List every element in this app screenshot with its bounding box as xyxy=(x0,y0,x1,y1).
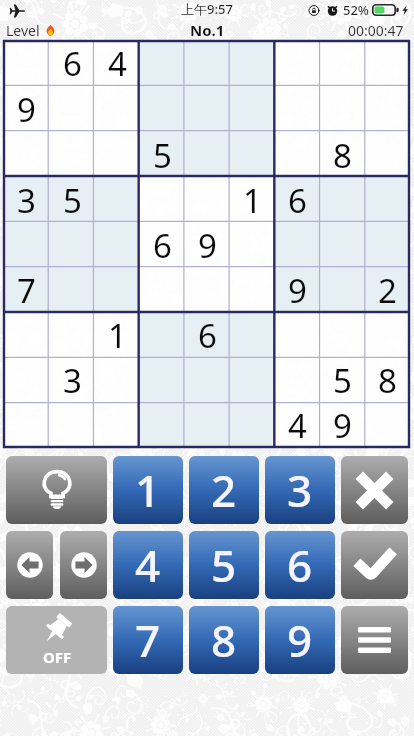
button[interactable]: 3 xyxy=(49,358,95,403)
button[interactable]: Undo xyxy=(6,531,53,599)
button[interactable]: 6 xyxy=(140,223,185,268)
button[interactable] xyxy=(95,132,140,178)
button[interactable]: 9 xyxy=(275,268,320,313)
button[interactable]: 6 xyxy=(265,531,335,599)
button[interactable] xyxy=(230,358,275,403)
button[interactable] xyxy=(49,313,95,358)
button[interactable]: 2 xyxy=(365,268,410,313)
button[interactable] xyxy=(275,40,320,86)
button[interactable] xyxy=(230,40,275,86)
button[interactable] xyxy=(185,40,230,86)
button[interactable]: 4 xyxy=(275,403,320,448)
button[interactable] xyxy=(95,223,140,268)
button[interactable]: 6 xyxy=(185,313,230,358)
button[interactable] xyxy=(365,132,410,178)
button[interactable] xyxy=(230,223,275,268)
button[interactable] xyxy=(230,268,275,313)
button[interactable] xyxy=(275,313,320,358)
button[interactable] xyxy=(3,358,49,403)
button[interactable] xyxy=(275,358,320,403)
button[interactable]: Delete xyxy=(341,456,408,524)
button[interactable] xyxy=(3,223,49,268)
button[interactable]: 5 xyxy=(189,531,259,599)
button[interactable] xyxy=(365,40,410,86)
button[interactable]: 4 xyxy=(95,40,140,86)
button[interactable]: 5 xyxy=(49,178,95,223)
button[interactable] xyxy=(185,132,230,178)
staticText: 4 xyxy=(135,535,161,595)
button[interactable] xyxy=(49,132,95,178)
button[interactable] xyxy=(320,40,365,86)
button[interactable] xyxy=(95,268,140,313)
button[interactable]: 3 xyxy=(265,456,335,524)
button[interactable] xyxy=(275,86,320,132)
button[interactable] xyxy=(49,86,95,132)
button[interactable]: Menu xyxy=(341,606,408,674)
button[interactable] xyxy=(140,40,185,86)
button[interactable] xyxy=(320,313,365,358)
button[interactable]: 5 xyxy=(320,358,365,403)
button[interactable] xyxy=(49,403,95,448)
button[interactable]: 6 xyxy=(275,178,320,223)
button[interactable]: Pin mode off xyxy=(6,606,107,674)
button[interactable] xyxy=(365,178,410,223)
button[interactable]: 8 xyxy=(189,606,259,674)
button[interactable]: 9 xyxy=(185,223,230,268)
staticText: 5 xyxy=(333,358,352,403)
button[interactable] xyxy=(185,358,230,403)
button[interactable] xyxy=(320,268,365,313)
button[interactable] xyxy=(185,403,230,448)
button[interactable] xyxy=(3,313,49,358)
button[interactable] xyxy=(140,86,185,132)
button[interactable] xyxy=(95,403,140,448)
button[interactable] xyxy=(3,40,49,86)
button[interactable]: 6 xyxy=(49,40,95,86)
button[interactable] xyxy=(185,178,230,223)
button[interactable] xyxy=(320,178,365,223)
button[interactable] xyxy=(49,268,95,313)
button[interactable] xyxy=(140,403,185,448)
button[interactable] xyxy=(365,313,410,358)
button[interactable] xyxy=(365,403,410,448)
button[interactable]: 1 xyxy=(95,313,140,358)
button[interactable] xyxy=(140,358,185,403)
button[interactable]: 3 xyxy=(3,178,49,223)
button[interactable] xyxy=(140,313,185,358)
button[interactable]: Check xyxy=(341,531,408,599)
button[interactable]: Hint xyxy=(6,456,107,524)
button[interactable] xyxy=(140,178,185,223)
button[interactable] xyxy=(365,86,410,132)
button[interactable] xyxy=(365,223,410,268)
staticText: 6 xyxy=(198,313,217,358)
button[interactable] xyxy=(140,268,185,313)
button[interactable]: 9 xyxy=(320,403,365,448)
button[interactable] xyxy=(3,403,49,448)
button[interactable] xyxy=(95,358,140,403)
button[interactable]: 1 xyxy=(230,178,275,223)
button[interactable] xyxy=(95,178,140,223)
button[interactable]: 8 xyxy=(365,358,410,403)
button[interactable] xyxy=(275,223,320,268)
button[interactable] xyxy=(230,86,275,132)
button[interactable] xyxy=(275,132,320,178)
button[interactable]: 9 xyxy=(3,86,49,132)
button[interactable]: 9 xyxy=(265,606,335,674)
button[interactable] xyxy=(185,86,230,132)
button[interactable]: 1 xyxy=(113,456,183,524)
button[interactable]: 5 xyxy=(140,132,185,178)
button[interactable]: Redo xyxy=(60,531,107,599)
button[interactable] xyxy=(320,223,365,268)
button[interactable] xyxy=(320,86,365,132)
button[interactable]: 7 xyxy=(113,606,183,674)
button[interactable] xyxy=(230,403,275,448)
button[interactable]: 8 xyxy=(320,132,365,178)
button[interactable] xyxy=(49,223,95,268)
button[interactable]: 7 xyxy=(3,268,49,313)
button[interactable]: 4 xyxy=(113,531,183,599)
button[interactable] xyxy=(185,268,230,313)
button[interactable] xyxy=(95,86,140,132)
button[interactable] xyxy=(3,132,49,178)
button[interactable] xyxy=(230,313,275,358)
button[interactable] xyxy=(230,132,275,178)
button[interactable]: 2 xyxy=(189,456,259,524)
